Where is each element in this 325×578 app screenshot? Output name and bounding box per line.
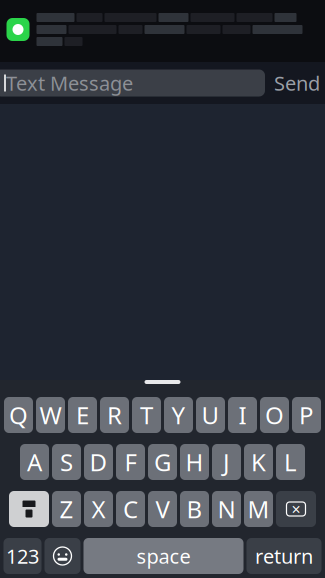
button[interactable]: J — [212, 444, 241, 480]
staticText: Y — [171, 399, 185, 431]
staticText: Z — [59, 493, 73, 525]
button[interactable]: P — [292, 397, 321, 433]
button[interactable]: M — [244, 491, 273, 527]
button[interactable]: K — [244, 444, 273, 480]
staticText: H — [185, 446, 203, 478]
staticText: C — [123, 493, 138, 525]
button[interactable]: B — [180, 491, 209, 527]
button[interactable]: L — [276, 444, 305, 480]
staticText: D — [89, 446, 107, 478]
staticText: T — [140, 399, 153, 431]
staticText: return — [255, 543, 313, 569]
button[interactable]: V — [148, 491, 177, 527]
button[interactable]: H — [180, 444, 209, 480]
staticText: W — [39, 399, 61, 431]
button[interactable]: E — [68, 397, 97, 433]
button[interactable]: F — [116, 444, 145, 480]
staticText: S — [60, 446, 73, 478]
staticText: B — [186, 493, 202, 525]
staticText: E — [76, 399, 89, 431]
staticText: U — [201, 399, 219, 431]
button[interactable]: 123 — [3, 538, 41, 574]
staticText: F — [124, 446, 136, 478]
button[interactable]: Y — [164, 397, 193, 433]
button[interactable]: R — [100, 397, 129, 433]
staticText: M — [247, 493, 269, 525]
button[interactable]: Send — [271, 64, 323, 102]
button[interactable]: I — [228, 397, 257, 433]
staticText: P — [299, 399, 314, 431]
staticText: R — [107, 399, 122, 431]
button[interactable]: G — [148, 444, 177, 480]
button[interactable]: Emoji — [44, 538, 80, 574]
staticText: G — [154, 446, 171, 478]
button[interactable]: Delete — [276, 491, 316, 527]
staticText: space — [136, 543, 190, 569]
staticText: I — [238, 399, 246, 431]
button[interactable]: Z — [52, 491, 81, 527]
button[interactable]: X — [84, 491, 113, 527]
staticText: J — [223, 446, 230, 478]
staticText: O — [265, 399, 284, 431]
button[interactable]: T — [132, 397, 161, 433]
button[interactable]: Shift — [9, 491, 49, 527]
button[interactable]: O — [260, 397, 289, 433]
button[interactable]: N — [212, 491, 241, 527]
button[interactable]: Text Message — [0, 69, 265, 96]
button[interactable]: C — [116, 491, 145, 527]
button[interactable]: A — [20, 444, 49, 480]
staticText: K — [251, 446, 266, 478]
staticText: N — [217, 493, 235, 525]
button[interactable]: space — [83, 538, 243, 574]
button[interactable]: S — [52, 444, 81, 480]
staticText: Send — [274, 70, 320, 96]
button[interactable]: W — [36, 397, 65, 433]
staticText: L — [284, 446, 297, 478]
staticText: × — [291, 498, 300, 520]
button[interactable]: Q — [4, 397, 33, 433]
button[interactable]: U — [196, 397, 225, 433]
staticText: Text Message — [6, 70, 133, 96]
button[interactable]: return — [246, 538, 321, 574]
button[interactable]: D — [84, 444, 113, 480]
staticText: A — [27, 446, 42, 478]
staticText: V — [155, 493, 169, 525]
staticText: X — [91, 493, 105, 525]
staticText: Q — [9, 399, 28, 431]
staticText: 123 — [6, 543, 39, 569]
